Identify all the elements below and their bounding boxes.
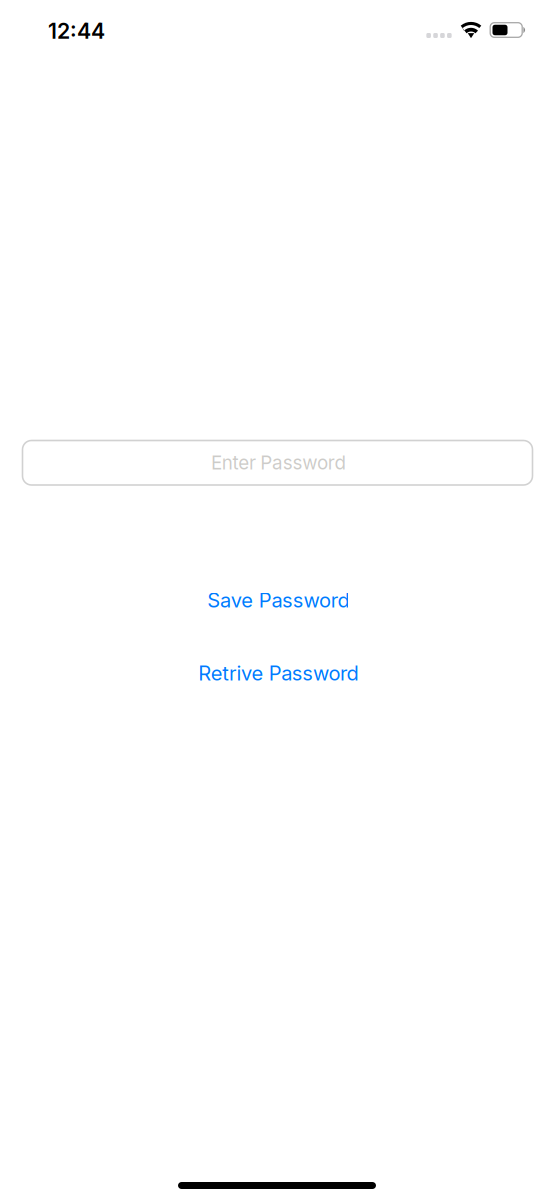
staticText: Enter Password xyxy=(211,451,346,474)
button[interactable]: Enter Password xyxy=(22,440,532,485)
staticText: Retrive Password xyxy=(198,661,359,685)
staticText: 12:44 xyxy=(48,18,105,44)
staticText: Save Password xyxy=(207,588,349,612)
button[interactable]: Retrive Password xyxy=(179,651,375,695)
button[interactable]: Save Password xyxy=(188,578,366,622)
